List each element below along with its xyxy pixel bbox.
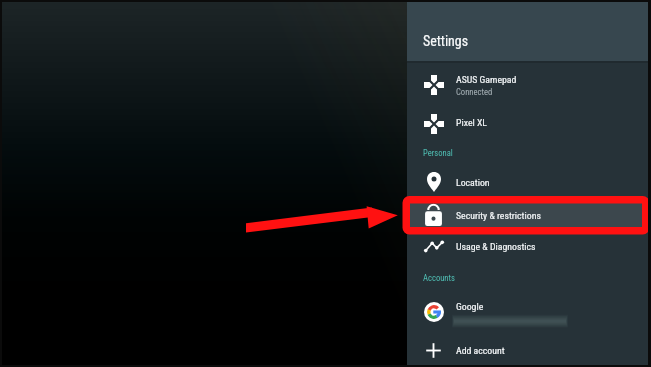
button[interactable]: [407, 234, 644, 266]
other: Security: [421, 203, 446, 228]
staticText: Add account: [456, 345, 505, 356]
staticText: Pixel XL: [456, 117, 488, 128]
other: Google account: [424, 302, 444, 322]
other: Usage and diagnostics: [423, 235, 445, 257]
staticText: Connected: [456, 87, 493, 97]
staticText: Settings: [423, 33, 469, 49]
staticText: Accounts: [423, 273, 455, 283]
button[interactable]: [407, 169, 644, 201]
staticText: Usage & Diagnostics: [456, 241, 536, 252]
staticText: Location: [456, 177, 490, 188]
button[interactable]: [407, 68, 644, 104]
other: Location: [422, 170, 446, 194]
staticText: Security & restrictions: [456, 210, 541, 221]
staticText: Personal: [423, 148, 453, 158]
button[interactable]: [407, 338, 644, 367]
button[interactable]: [407, 294, 644, 336]
button[interactable]: [407, 110, 644, 142]
staticText: ASUS Gamepad: [456, 74, 517, 85]
other: Gamepad: [422, 112, 446, 136]
other: Gamepad: [422, 73, 446, 97]
staticText: Google: [456, 301, 484, 312]
other: Add account: [421, 338, 446, 363]
button[interactable]: [407, 202, 644, 230]
